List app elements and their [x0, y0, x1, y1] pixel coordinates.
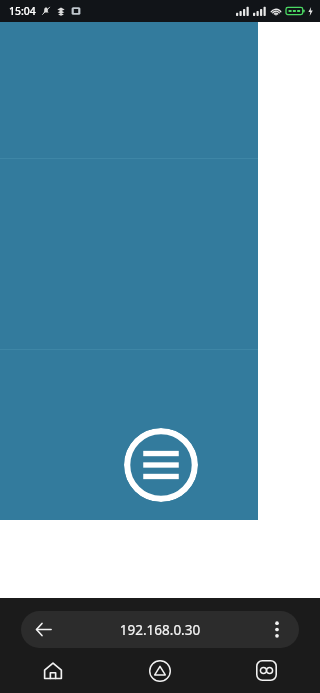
button[interactable]: More options: [255, 611, 299, 648]
button[interactable]: Home: [0, 648, 106, 693]
button[interactable]: Tabs: [213, 648, 320, 693]
staticText: 15:04: [9, 4, 36, 18]
button[interactable]: Menu: [124, 428, 198, 502]
button[interactable]: Back: [21, 611, 65, 648]
button[interactable]: Back: [21, 611, 299, 648]
button[interactable]: Browser: [106, 648, 213, 693]
staticText: 192.168.0.30: [65, 621, 255, 639]
